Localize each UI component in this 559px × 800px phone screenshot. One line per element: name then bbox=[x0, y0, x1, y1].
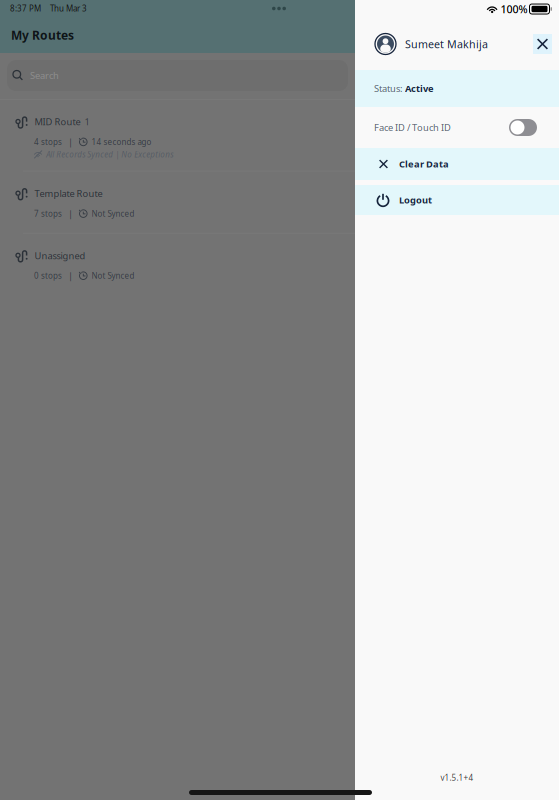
staticText: Thu Mar 3 bbox=[50, 3, 87, 14]
staticText: 7 stops bbox=[34, 208, 62, 219]
staticText: MID Route bbox=[34, 115, 80, 128]
staticText: 8:37 PM bbox=[10, 3, 41, 14]
staticText: Logout bbox=[399, 194, 432, 206]
staticText: | bbox=[68, 136, 73, 148]
button[interactable]: Clear Data bbox=[355, 148, 559, 180]
button[interactable]: Logout bbox=[355, 185, 559, 215]
staticText: v1.5.1+4 bbox=[440, 772, 473, 783]
staticText: Clear Data bbox=[399, 158, 449, 170]
staticText: Search bbox=[30, 69, 59, 82]
staticText: Sumeet Makhija bbox=[405, 37, 488, 51]
staticText: Not Synced bbox=[92, 208, 135, 219]
staticText: 14 seconds ago bbox=[92, 137, 152, 147]
staticText: Status: bbox=[374, 82, 405, 95]
staticText: All Records Synced | No Exceptions bbox=[46, 149, 173, 160]
staticText: 4 stops bbox=[34, 137, 62, 147]
staticText: 0 stops bbox=[34, 270, 62, 281]
button[interactable]: MID Route bbox=[0, 100, 355, 171]
button[interactable]: Template Route bbox=[0, 171, 355, 233]
staticText: | bbox=[68, 207, 73, 220]
staticText: My Routes bbox=[11, 27, 74, 43]
staticText: Not Synced bbox=[92, 270, 135, 281]
staticText: 100% bbox=[500, 2, 527, 16]
button[interactable]: Unassigned bbox=[0, 233, 355, 295]
staticText: Template Route bbox=[34, 187, 102, 200]
staticText: Unassigned bbox=[34, 249, 85, 262]
staticText: | bbox=[68, 269, 73, 282]
staticText: Face ID / Touch ID bbox=[374, 121, 451, 134]
staticText: Active bbox=[405, 82, 434, 95]
button[interactable]: Face ID / Touch ID bbox=[509, 119, 537, 136]
button[interactable]: Close menu bbox=[533, 34, 552, 54]
staticText: 1 bbox=[84, 115, 89, 128]
